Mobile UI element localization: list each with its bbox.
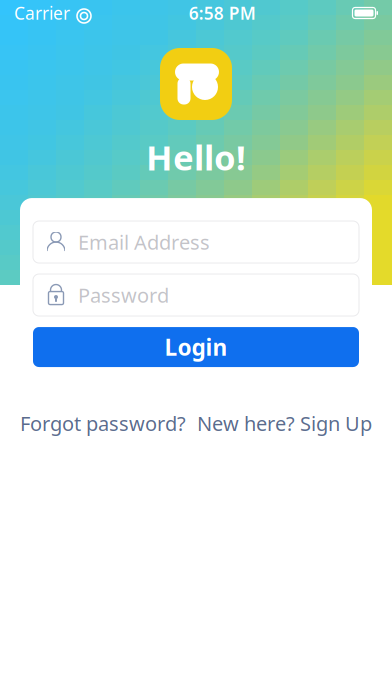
button[interactable]: Password [33,274,359,316]
button[interactable]: Login [33,327,359,367]
staticText: New here? Sign Up [197,410,372,437]
button[interactable]: New here? Sign Up [197,410,372,437]
button[interactable]: Email Address [33,221,359,263]
staticText: Password [78,282,169,308]
staticText: Login [164,332,227,362]
staticText: Carrier [14,1,70,24]
staticText: Email Address [78,229,210,255]
staticText: Forgot password? [20,410,186,437]
staticText: 6:58 PM [189,1,256,24]
button[interactable]: Forgot password? [20,410,186,437]
staticText: Hello! [146,134,246,180]
